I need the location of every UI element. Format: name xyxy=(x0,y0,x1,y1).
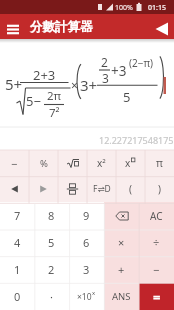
staticText: × xyxy=(118,235,125,250)
staticText: % xyxy=(40,157,48,170)
staticText: 12.227217548175 xyxy=(99,134,174,146)
button[interactable]: 1 xyxy=(0,256,34,283)
staticText: 2π xyxy=(47,88,62,104)
button[interactable]: 8 xyxy=(34,202,69,229)
button[interactable]: x² xyxy=(87,150,116,176)
button[interactable]: ( xyxy=(116,176,145,202)
staticText: 9 xyxy=(83,208,90,223)
staticText: 2 xyxy=(48,262,55,277)
staticText: (2−π) xyxy=(129,56,153,70)
button[interactable] xyxy=(29,176,58,202)
staticText: 6 xyxy=(83,235,90,250)
button[interactable]: ) xyxy=(145,176,174,202)
staticText: 3 xyxy=(83,262,90,277)
button[interactable]: π xyxy=(145,150,174,176)
button[interactable]: 0 xyxy=(0,283,34,310)
button[interactable] xyxy=(104,202,139,229)
staticText: ) xyxy=(158,182,161,196)
staticText: +3 xyxy=(111,62,127,80)
staticText: ANS xyxy=(112,290,131,303)
staticText: F⇌D xyxy=(93,183,111,195)
staticText: ÷ xyxy=(153,235,160,250)
staticText: ( xyxy=(129,182,132,196)
staticText: − xyxy=(153,262,160,277)
staticText: 8 xyxy=(48,208,55,223)
staticText: 01:15 xyxy=(148,3,166,13)
button[interactable]: 6 xyxy=(69,229,104,256)
staticText: 7 xyxy=(14,208,21,223)
staticText: π xyxy=(156,156,163,170)
staticText: 2+3 xyxy=(33,66,56,84)
staticText: AC xyxy=(150,209,163,223)
staticText: 1 xyxy=(14,262,21,277)
staticText: − xyxy=(11,156,18,171)
button[interactable]: F⇌D xyxy=(87,176,116,202)
staticText: ×10 xyxy=(77,291,92,303)
staticText: 5− xyxy=(26,92,41,110)
staticText: + xyxy=(118,262,125,277)
button[interactable] xyxy=(0,176,29,202)
staticText: x² xyxy=(97,156,106,170)
staticText: x xyxy=(125,156,131,170)
button[interactable]: ×10 xyxy=(69,283,104,310)
staticText: = xyxy=(153,288,161,306)
staticText: 0 xyxy=(14,289,21,304)
button[interactable]: 3 xyxy=(69,256,104,283)
button[interactable]: % xyxy=(29,150,58,176)
button[interactable]: x xyxy=(116,150,145,176)
button[interactable]: − xyxy=(0,150,29,176)
staticText: 2 xyxy=(101,54,108,70)
staticText: 3+ xyxy=(80,75,98,95)
staticText: 5 xyxy=(48,235,55,250)
button[interactable] xyxy=(58,150,87,176)
staticText: 3 xyxy=(102,70,109,86)
staticText: 7² xyxy=(49,105,60,121)
staticText: 100% xyxy=(115,3,133,13)
staticText: 5 xyxy=(123,88,131,106)
staticText: 5+ xyxy=(5,74,23,94)
button[interactable]: − xyxy=(139,256,174,283)
button[interactable] xyxy=(58,176,87,202)
staticText: x xyxy=(92,289,96,297)
button[interactable]: × xyxy=(104,229,139,256)
button[interactable]: ANS xyxy=(104,283,139,310)
button[interactable]: ÷ xyxy=(139,229,174,256)
button[interactable]: 2 xyxy=(34,256,69,283)
button[interactable] xyxy=(150,19,172,39)
button[interactable]: 4 xyxy=(0,229,34,256)
button[interactable]: · xyxy=(34,283,69,310)
staticText: × xyxy=(71,77,78,93)
staticText: 4 xyxy=(14,235,21,250)
staticText: · xyxy=(50,289,53,304)
button[interactable]: + xyxy=(104,256,139,283)
button[interactable]: 7 xyxy=(0,202,34,229)
button[interactable]: = xyxy=(139,283,174,310)
button[interactable]: 9 xyxy=(69,202,104,229)
staticText: 分數計算器 xyxy=(30,19,93,35)
button[interactable]: AC xyxy=(139,202,174,229)
button[interactable] xyxy=(3,17,23,37)
button[interactable]: 5 xyxy=(34,229,69,256)
